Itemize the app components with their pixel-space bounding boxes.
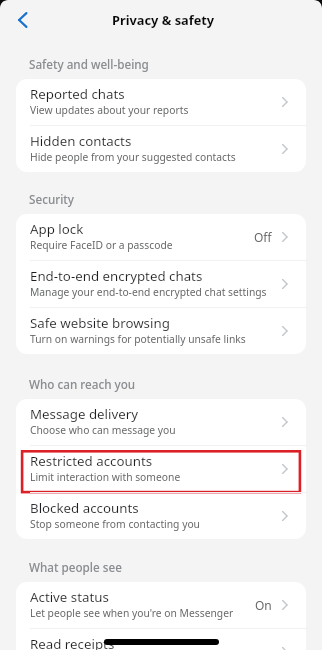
staticText: Choose who can message you <box>30 423 176 437</box>
button[interactable]: Back <box>6 1 39 34</box>
staticText: Blocked accounts <box>30 499 139 517</box>
staticText: View updates about your reports <box>30 103 189 117</box>
button[interactable]: App lock <box>16 214 306 260</box>
staticText: Read receipts <box>30 635 115 650</box>
button[interactable]: Message delivery <box>16 399 306 445</box>
staticText: Active status <box>30 588 109 606</box>
staticText: End-to-end encrypted chats <box>30 267 203 285</box>
staticText: Restricted accounts <box>30 452 153 470</box>
staticText: Stop someone from contacting you <box>30 517 200 531</box>
staticText: Who can reach you <box>29 376 136 392</box>
button[interactable]: Hidden contacts <box>16 126 306 172</box>
staticText: Turn on warnings for potentially unsafe … <box>30 332 246 346</box>
staticText: Let people see when you're on Messenger <box>30 606 234 620</box>
staticText: Safe website browsing <box>30 314 170 332</box>
button[interactable]: Blocked accounts <box>16 493 306 539</box>
staticText: Manage your end-to-end encrypted chat se… <box>30 285 267 299</box>
staticText: Hidden contacts <box>30 132 132 150</box>
button[interactable]: End-to-end encrypted chats <box>16 261 306 307</box>
button[interactable]: Safe website browsing <box>16 308 306 354</box>
button[interactable]: Reported chats <box>16 79 306 125</box>
staticText: Hide people from your suggested contacts <box>30 150 236 164</box>
staticText: App lock <box>30 220 84 238</box>
staticText: Reported chats <box>30 85 125 103</box>
button[interactable]: Read receipts <box>16 629 306 650</box>
staticText: Limit interaction with someone <box>30 470 181 484</box>
staticText: On <box>255 597 272 613</box>
staticText: Safety and well-being <box>29 56 149 72</box>
staticText: What people see <box>29 559 122 575</box>
button[interactable]: Active status <box>16 582 306 628</box>
staticText: Privacy & safety <box>112 11 215 28</box>
staticText: Require FaceID or a passcode <box>30 238 173 252</box>
staticText: Security <box>29 191 74 207</box>
button[interactable]: Restricted accounts <box>16 446 306 492</box>
staticText: Off <box>254 229 272 245</box>
staticText: Message delivery <box>30 405 138 423</box>
